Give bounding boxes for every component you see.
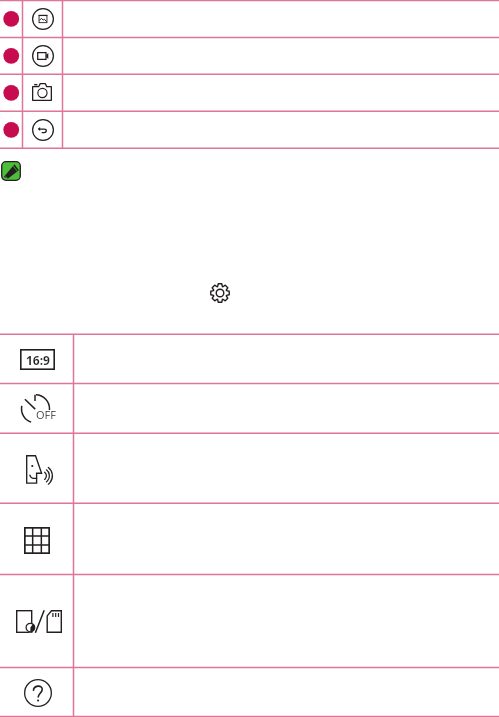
button[interactable]: Back bbox=[32, 119, 54, 141]
button[interactable]: Record video bbox=[32, 45, 54, 67]
button[interactable]: Voice shutter bbox=[26, 455, 53, 484]
button[interactable]: Aspect ratio 16 by 9 bbox=[20, 349, 55, 370]
staticText: OFF bbox=[36, 407, 57, 422]
button[interactable]: Timer off bbox=[20, 393, 55, 423]
button[interactable]: Camera bbox=[32, 83, 52, 101]
button[interactable]: QuickMemo bbox=[1, 161, 21, 181]
button[interactable]: Gallery bbox=[32, 8, 54, 30]
button[interactable]: Settings bbox=[210, 283, 230, 303]
button[interactable]: Storage bbox=[16, 610, 62, 633]
button[interactable]: Grid bbox=[24, 527, 50, 554]
staticText: 16:9 bbox=[26, 352, 50, 368]
button[interactable]: Help bbox=[24, 679, 52, 707]
